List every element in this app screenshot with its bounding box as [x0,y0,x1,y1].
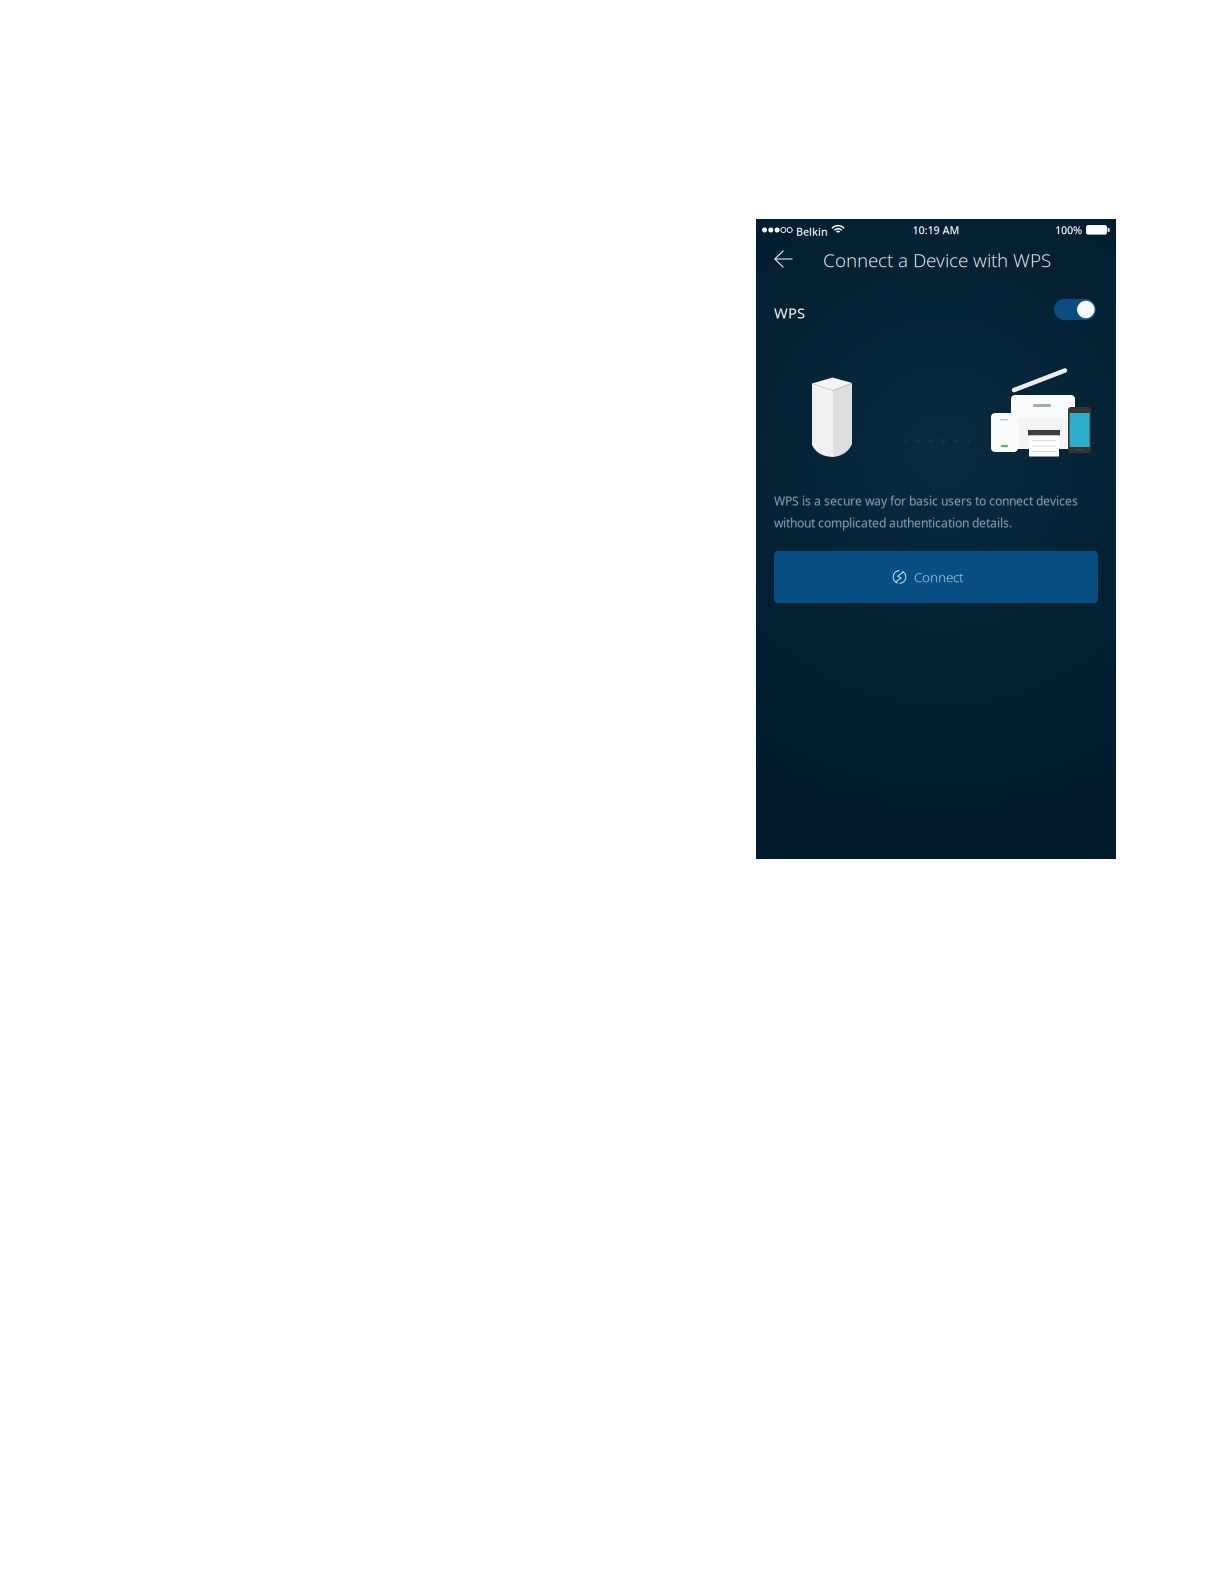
button[interactable]: WPS [756,219,798,240]
staticText: WPS is a secure way for basic users to c… [774,493,1078,509]
staticText: Belkin [796,224,828,239]
staticText: WPS [774,303,805,322]
button[interactable]: Connect [756,219,1080,271]
staticText: 100% [1055,223,1082,237]
staticText: without complicated authentication detai… [774,515,1012,531]
staticText: Connect a Device with WPS [823,247,1051,272]
staticText: Connect [914,568,964,586]
staticText: 10:19 AM [912,223,959,237]
button[interactable]: Back [756,219,800,259]
